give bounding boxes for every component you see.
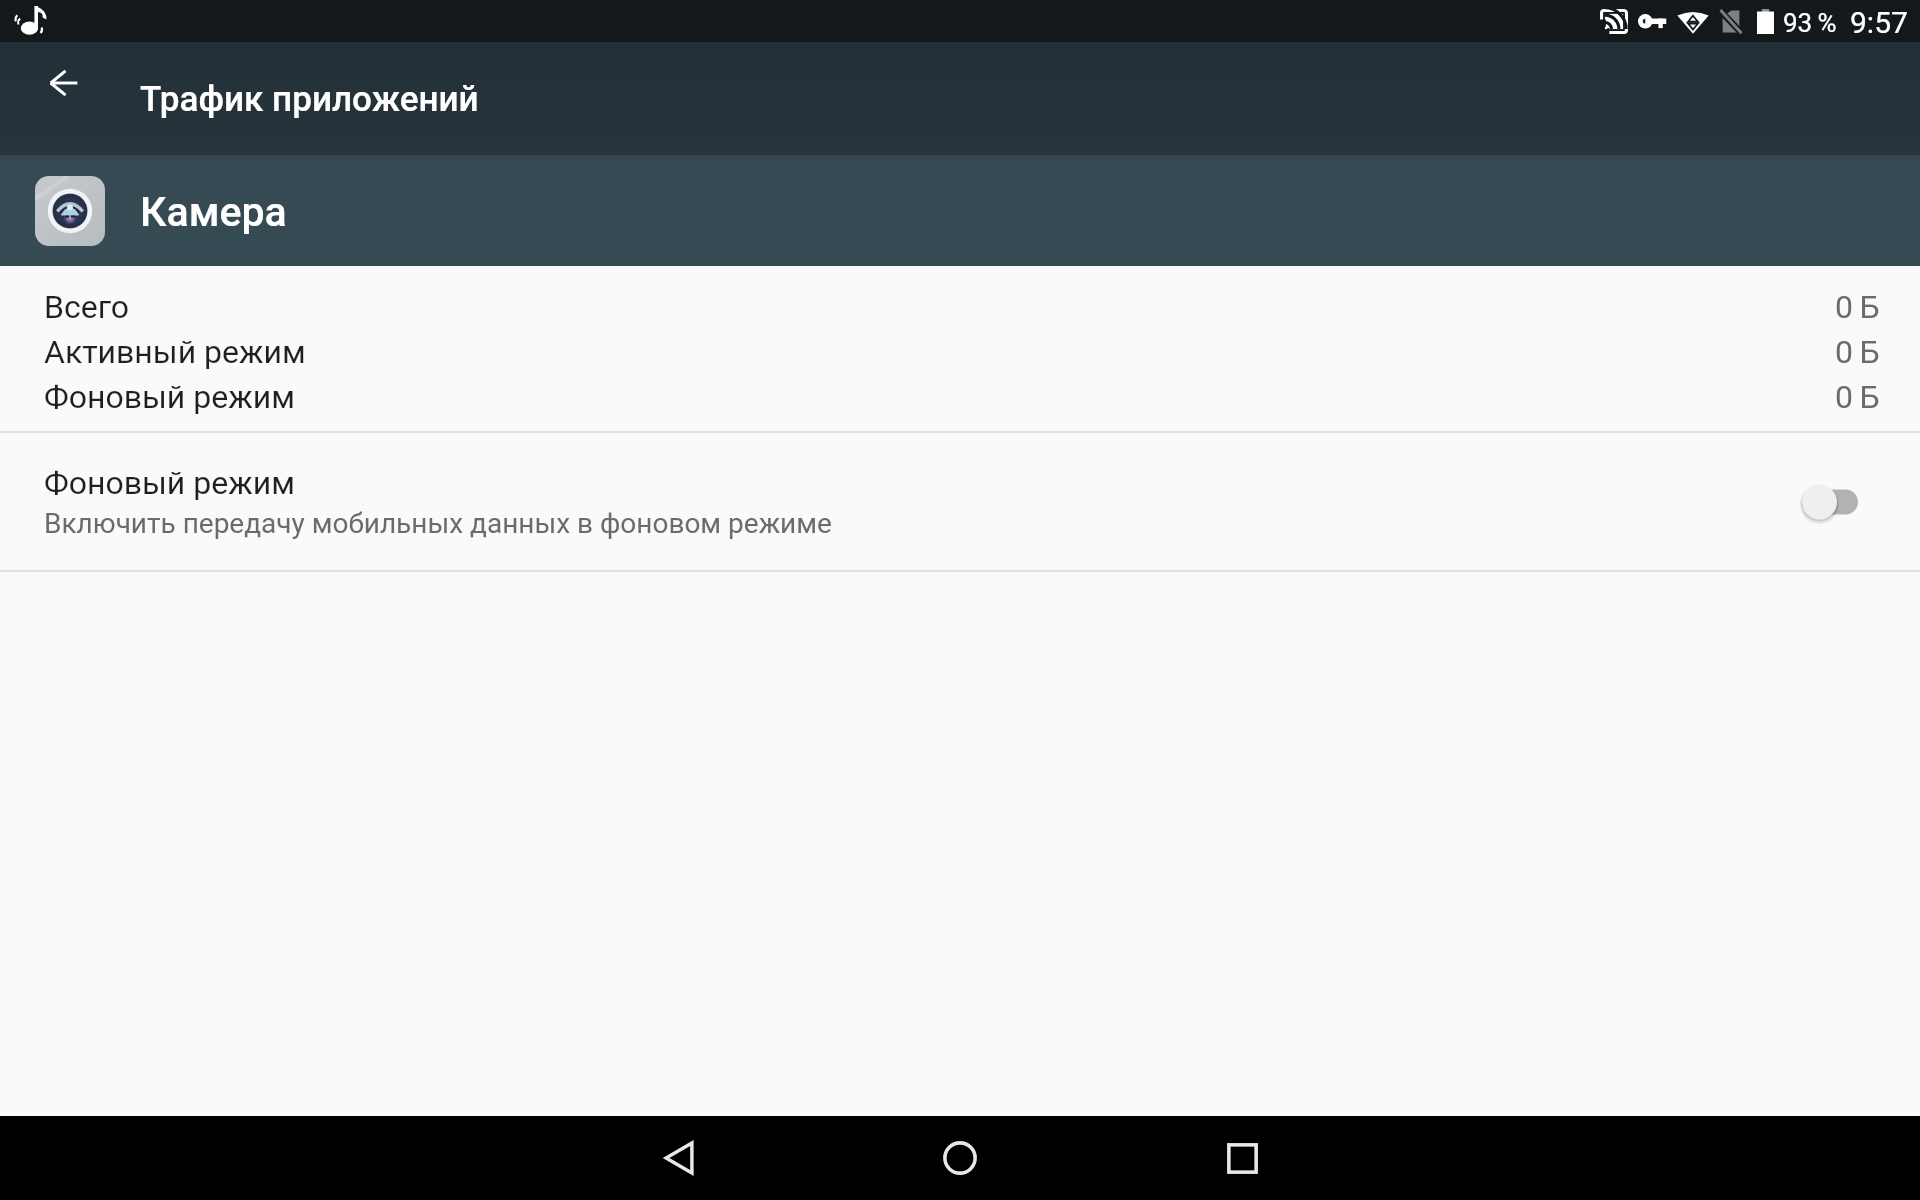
staticText: Всего (44, 288, 130, 326)
staticText: Фоновый режим (44, 378, 295, 416)
staticText: 9:57 (1850, 5, 1908, 40)
staticText: 0 Б (1835, 288, 1880, 326)
button[interactable]: Back (619, 1116, 739, 1200)
staticText: Фоновый режим (44, 464, 295, 502)
staticText: Активный режим (44, 333, 306, 371)
staticText: Камера (140, 188, 287, 236)
staticText: Включить передачу мобильных данных в фон… (44, 507, 832, 540)
button[interactable]: Home (900, 1116, 1020, 1200)
button[interactable]: Back (21, 42, 105, 124)
staticText: 93 % (1783, 8, 1837, 38)
button[interactable]: Фоновый режим (0, 433, 1920, 570)
staticText: Трафик приложений (140, 79, 479, 120)
button[interactable]: Recent apps (1182, 1116, 1302, 1200)
staticText: 0 Б (1835, 333, 1880, 371)
button[interactable]: Background data toggle (1800, 478, 1862, 526)
staticText: 0 Б (1835, 378, 1880, 416)
